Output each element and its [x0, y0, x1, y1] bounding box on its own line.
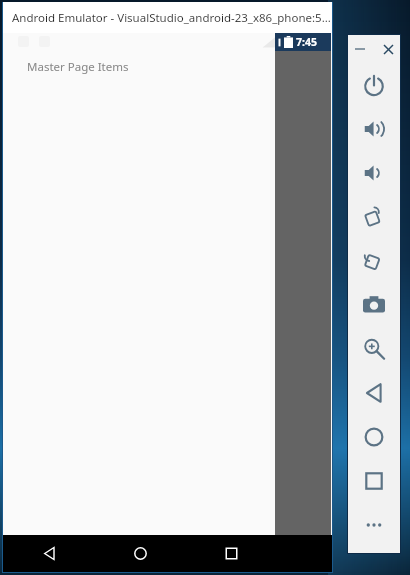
button[interactable]: Screenshot [348, 283, 400, 327]
button[interactable]: Home [348, 415, 400, 459]
button[interactable]: Home [95, 535, 186, 572]
button[interactable]: Power [348, 63, 400, 107]
button[interactable]: Volume up [348, 107, 400, 151]
button[interactable]: Minimize [350, 39, 370, 59]
button[interactable]: Zoom [348, 327, 400, 371]
button[interactable]: Rotate left [348, 195, 400, 239]
button[interactable]: Back [348, 371, 400, 415]
button[interactable]: Volume down [348, 151, 400, 195]
staticText: Android Emulator - VisualStudio_android-… [12, 10, 331, 26]
staticText: 7:45 [296, 35, 317, 49]
button[interactable]: Back [3, 535, 95, 572]
button[interactable]: Recents [186, 535, 277, 572]
staticText: Master Page Items [27, 59, 129, 75]
button[interactable]: More [348, 503, 400, 547]
button[interactable]: Overview [348, 459, 400, 503]
button[interactable]: Rotate right [348, 239, 400, 283]
button[interactable]: Close [378, 39, 398, 59]
